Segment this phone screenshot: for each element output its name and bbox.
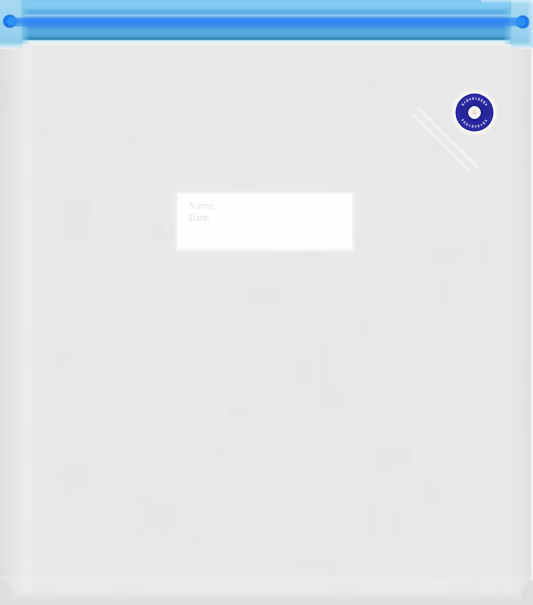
button[interactable]: Close zipper (505, 8, 533, 38)
button[interactable]: Air tight sure lok valve (451, 89, 498, 136)
staticText: Date: (189, 212, 211, 224)
staticText: Name: (189, 200, 216, 212)
button[interactable]: Open zipper (0, 8, 28, 38)
